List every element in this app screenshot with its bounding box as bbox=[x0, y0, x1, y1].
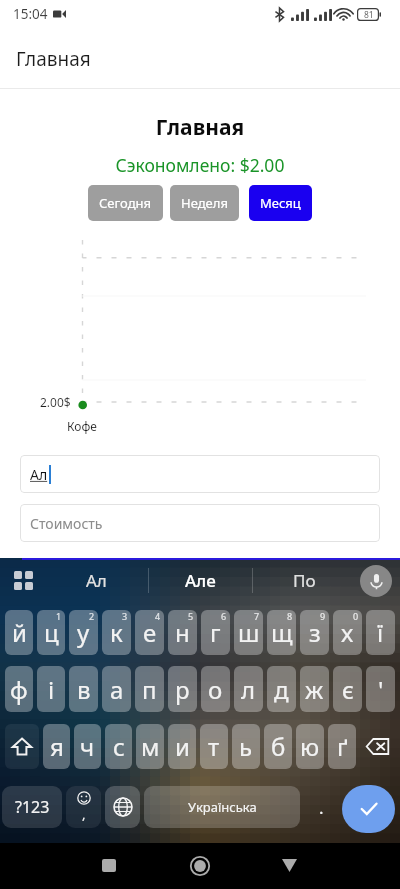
staticText: ' bbox=[378, 673, 384, 706]
staticText: я bbox=[50, 730, 64, 763]
button[interactable]: ь bbox=[232, 724, 260, 769]
button[interactable]: є bbox=[333, 666, 362, 712]
button[interactable]: Українська bbox=[144, 786, 300, 828]
button[interactable]: т bbox=[200, 724, 228, 769]
button[interactable]: Shift bbox=[5, 724, 39, 769]
staticText: Українська bbox=[188, 798, 257, 816]
staticText: Ал bbox=[86, 569, 107, 592]
staticText: і bbox=[48, 673, 55, 706]
staticText: ю bbox=[300, 730, 320, 763]
button[interactable]: ф bbox=[5, 666, 33, 712]
staticText: н bbox=[175, 616, 190, 649]
button[interactable]: . bbox=[304, 786, 338, 828]
staticText: ь bbox=[239, 730, 253, 763]
button[interactable]: ю bbox=[296, 724, 324, 769]
button[interactable]: л bbox=[234, 666, 263, 712]
button[interactable]: н bbox=[168, 610, 197, 655]
staticText: п bbox=[142, 673, 157, 706]
button[interactable]: Back bbox=[261, 842, 317, 888]
button[interactable]: щ bbox=[267, 610, 296, 655]
staticText: у bbox=[77, 616, 90, 649]
button[interactable]: ' bbox=[366, 666, 395, 712]
button[interactable]: Месяц bbox=[249, 185, 312, 221]
button[interactable]: о bbox=[201, 666, 230, 712]
button[interactable]: Сегодня bbox=[88, 185, 163, 221]
button[interactable]: м bbox=[136, 724, 164, 769]
button[interactable]: х bbox=[333, 610, 362, 655]
staticText: Месяц bbox=[260, 194, 301, 212]
button[interactable]: р bbox=[168, 666, 197, 712]
button[interactable]: і bbox=[37, 666, 65, 712]
button[interactable]: Ал bbox=[20, 455, 380, 493]
button[interactable]: Recent apps bbox=[81, 842, 137, 888]
button[interactable]: в bbox=[69, 666, 98, 712]
button[interactable]: Стоимость bbox=[20, 504, 380, 542]
staticText: ц bbox=[44, 616, 59, 649]
button[interactable]: Change language bbox=[105, 786, 140, 828]
button[interactable]: По bbox=[253, 558, 356, 603]
button[interactable]: з bbox=[300, 610, 329, 655]
staticText: д bbox=[274, 673, 289, 706]
button[interactable]: д bbox=[267, 666, 296, 712]
button[interactable]: ґ bbox=[328, 724, 356, 769]
staticText: ґ bbox=[337, 730, 348, 763]
staticText: б bbox=[271, 730, 286, 763]
staticText: е bbox=[143, 616, 157, 649]
staticText: ф bbox=[10, 673, 28, 706]
button[interactable]: Keyboard settings bbox=[8, 565, 39, 596]
staticText: Неделя bbox=[181, 194, 228, 212]
staticText: ?123 bbox=[15, 796, 50, 818]
staticText: Главная bbox=[0, 113, 400, 142]
button[interactable]: ш bbox=[234, 610, 263, 655]
staticText: 2 bbox=[89, 610, 95, 622]
staticText: х bbox=[341, 616, 354, 649]
staticText: г bbox=[210, 616, 221, 649]
button[interactable]: ц bbox=[37, 610, 65, 655]
staticText: 15:04 bbox=[13, 5, 48, 23]
staticText: 0 bbox=[353, 610, 359, 622]
button[interactable]: й bbox=[5, 610, 33, 655]
staticText: з bbox=[309, 616, 321, 649]
button[interactable]: ?123 bbox=[2, 786, 62, 828]
button[interactable]: с bbox=[105, 724, 132, 769]
staticText: й bbox=[12, 616, 27, 649]
staticText: т bbox=[208, 730, 220, 763]
staticText: , bbox=[82, 805, 86, 823]
button[interactable]: ї bbox=[366, 610, 395, 655]
button[interactable]: Backspace bbox=[360, 724, 395, 769]
staticText: Сегодня bbox=[99, 194, 152, 212]
staticText: л bbox=[241, 673, 256, 706]
button[interactable]: ж bbox=[300, 666, 329, 712]
staticText: По bbox=[293, 569, 316, 592]
button[interactable]: Emoji bbox=[66, 786, 101, 828]
button[interactable]: Home bbox=[172, 843, 228, 889]
staticText: 3 bbox=[122, 610, 128, 622]
button[interactable]: б bbox=[264, 724, 292, 769]
button[interactable]: п bbox=[135, 666, 164, 712]
button[interactable]: Але bbox=[149, 558, 252, 603]
staticText: . bbox=[319, 796, 324, 819]
button[interactable]: Voice input bbox=[360, 565, 392, 597]
staticText: с bbox=[113, 730, 125, 763]
button[interactable]: г bbox=[201, 610, 230, 655]
staticText: Ал bbox=[30, 465, 48, 484]
button[interactable]: Ал bbox=[44, 558, 148, 603]
staticText: 6 bbox=[221, 610, 227, 622]
staticText: ж bbox=[305, 673, 324, 706]
button[interactable]: и bbox=[168, 724, 196, 769]
staticText: Главная bbox=[16, 46, 91, 72]
button[interactable]: е bbox=[135, 610, 164, 655]
staticText: р bbox=[175, 673, 190, 706]
button[interactable]: у bbox=[69, 610, 98, 655]
button[interactable]: а bbox=[102, 666, 131, 712]
button[interactable]: Done bbox=[342, 785, 395, 833]
button[interactable]: ч bbox=[74, 724, 101, 769]
staticText: Сэкономлено: $2.00 bbox=[0, 153, 400, 177]
staticText: м bbox=[141, 730, 160, 763]
button[interactable]: Неделя bbox=[170, 185, 239, 221]
staticText: к bbox=[110, 616, 123, 649]
staticText: в bbox=[77, 673, 91, 706]
button[interactable]: к bbox=[102, 610, 131, 655]
staticText: є bbox=[342, 673, 354, 706]
button[interactable]: я bbox=[43, 724, 70, 769]
